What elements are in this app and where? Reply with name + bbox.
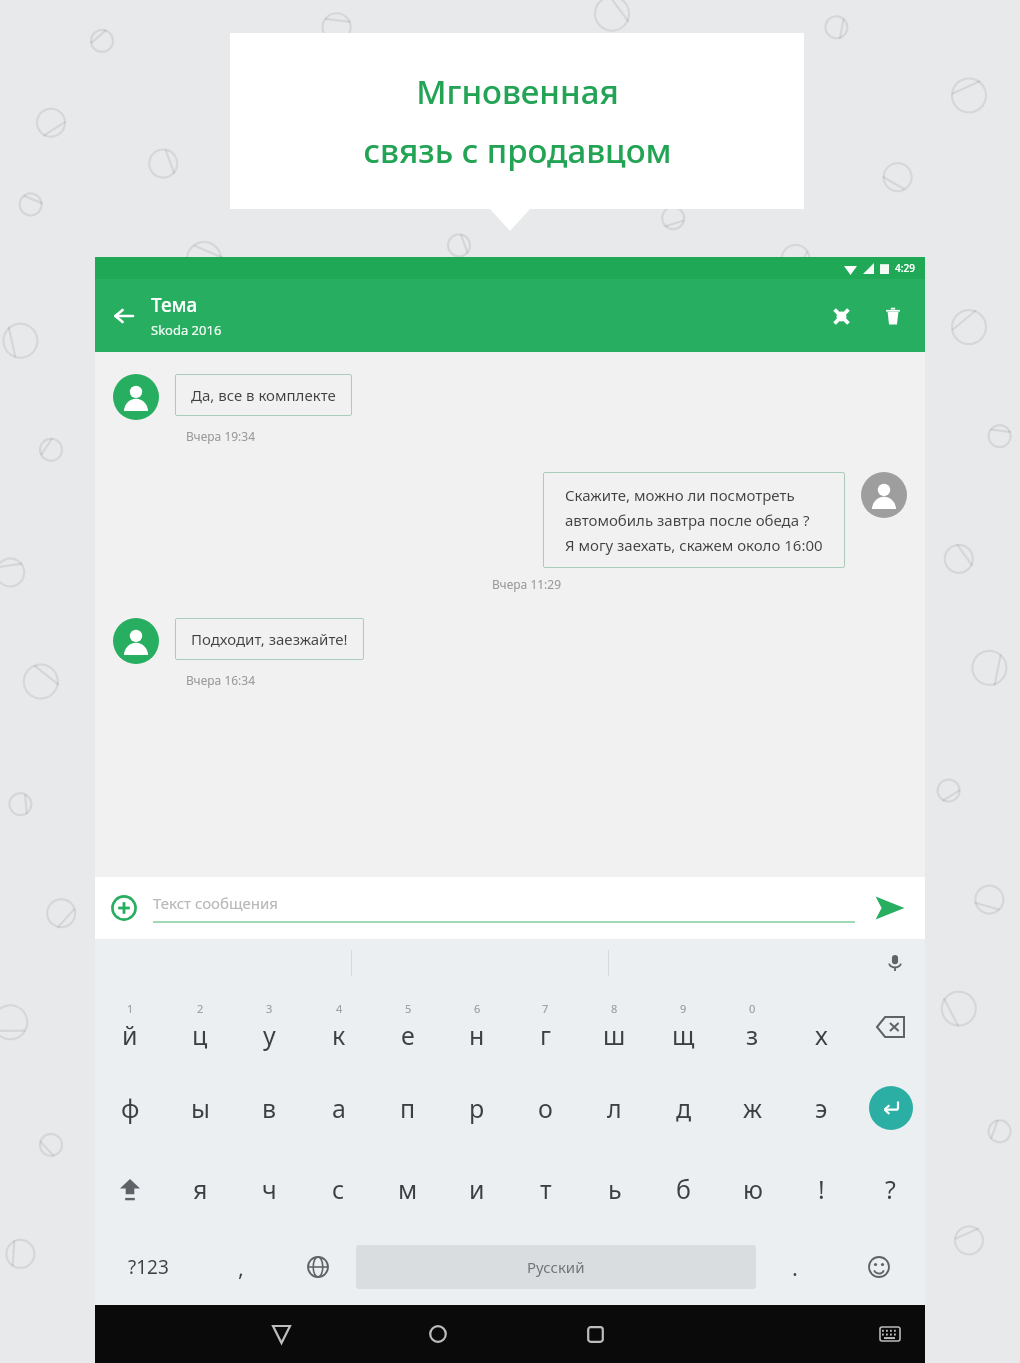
staticText: ф — [121, 1091, 140, 1125]
staticText: ю — [743, 1172, 763, 1206]
button[interactable]: 1 — [95, 986, 165, 1067]
staticText: и — [469, 1172, 485, 1206]
button[interactable]: ! — [787, 1148, 856, 1229]
staticText: ! — [818, 1172, 825, 1206]
staticText: Скажите, можно ли посмотреть — [565, 485, 795, 505]
button[interactable]: а — [304, 1067, 373, 1148]
button[interactable]: 5 — [373, 986, 442, 1067]
staticText: б — [676, 1172, 691, 1206]
button[interactable]: 9 — [649, 986, 718, 1067]
staticText: Тема — [151, 292, 198, 318]
button[interactable]: б — [649, 1148, 718, 1229]
staticText: в — [262, 1091, 277, 1125]
button[interactable]: , — [202, 1229, 279, 1305]
staticText: й — [122, 1018, 138, 1052]
button[interactable]: о — [511, 1067, 580, 1148]
staticText: 1 — [127, 1001, 134, 1016]
staticText: щ — [672, 1018, 695, 1052]
button[interactable]: я — [165, 1148, 235, 1229]
staticText: Вчера 16:34 — [186, 672, 256, 688]
staticText: Подходит, заезжайте! — [191, 629, 348, 649]
staticText: т — [540, 1172, 552, 1206]
staticText: ж — [743, 1091, 762, 1125]
staticText: е — [401, 1018, 415, 1052]
button[interactable]: 2 — [165, 986, 235, 1067]
button[interactable]: Русский — [356, 1245, 756, 1289]
staticText: Русский — [527, 1257, 585, 1277]
button[interactable]: ы — [165, 1067, 235, 1148]
button[interactable]: Клавиатура — [861, 1305, 919, 1363]
button[interactable]: 4 — [304, 986, 373, 1067]
button[interactable]: Главный экран — [409, 1305, 467, 1363]
staticText: н — [469, 1018, 485, 1052]
button[interactable]: Shift — [95, 1148, 165, 1229]
button[interactable]: Ввод — [856, 1067, 925, 1148]
staticText: 6 — [474, 1001, 481, 1016]
button[interactable]: 6 — [442, 986, 511, 1067]
button[interactable]: т — [511, 1148, 580, 1229]
staticText: д — [676, 1091, 692, 1125]
button[interactable]: 7 — [511, 986, 580, 1067]
staticText: 0 — [749, 1001, 756, 1016]
staticText: ь — [608, 1172, 622, 1206]
button[interactable]: 3 — [235, 986, 304, 1067]
button[interactable]: Эмодзи — [833, 1229, 925, 1305]
staticText: л — [607, 1091, 622, 1125]
button[interactable]: и — [442, 1148, 511, 1229]
staticText: Вчера 11:29 — [492, 576, 562, 592]
staticText: к — [332, 1018, 346, 1052]
button[interactable]: Назад — [252, 1305, 310, 1363]
button[interactable]: Заблокировать — [813, 288, 869, 344]
button[interactable]: Подходит, заезжайте! — [175, 618, 364, 660]
button[interactable]: ? — [856, 1148, 925, 1229]
staticText: ы — [191, 1091, 210, 1125]
staticText: х — [815, 1018, 828, 1052]
staticText: 2 — [197, 1001, 204, 1016]
button[interactable]: ?123 — [95, 1229, 202, 1305]
button[interactable]: п — [373, 1067, 442, 1148]
staticText: ? — [885, 1172, 896, 1206]
button[interactable]: Отправить — [855, 877, 925, 939]
button[interactable]: э — [787, 1067, 856, 1148]
button[interactable]: в — [235, 1067, 304, 1148]
button[interactable]: Добавить вложение — [95, 879, 153, 937]
button[interactable]: ь — [580, 1148, 649, 1229]
button[interactable]: Недавние приложения — [566, 1305, 624, 1363]
staticText: Мгновенная — [416, 69, 619, 114]
button[interactable]: ж — [718, 1067, 787, 1148]
button[interactable]: Скажите, можно ли посмотреть — [543, 472, 845, 568]
staticText: у — [263, 1018, 276, 1052]
button[interactable]: м — [373, 1148, 442, 1229]
button[interactable]: 0 — [718, 986, 787, 1067]
button[interactable]: с — [304, 1148, 373, 1229]
staticText: Skoda 2016 — [151, 321, 222, 339]
button[interactable]: ф — [95, 1067, 165, 1148]
staticText: э — [815, 1091, 828, 1125]
staticText: Текст сообщения — [153, 893, 278, 913]
button[interactable]: . — [756, 1229, 833, 1305]
button[interactable]: д — [649, 1067, 718, 1148]
button[interactable]: Сменить язык — [279, 1229, 356, 1305]
button[interactable]: л — [580, 1067, 649, 1148]
staticText: 9 — [680, 1001, 687, 1016]
staticText: Да, все в комплекте — [191, 385, 336, 405]
button[interactable]: р — [442, 1067, 511, 1148]
staticText: 4:29 — [895, 261, 915, 275]
staticText: автомобиль завтра после обеда ? — [565, 510, 810, 530]
button[interactable]: Да, все в комплекте — [175, 374, 352, 416]
staticText: 7 — [542, 1001, 549, 1016]
button[interactable]: 8 — [580, 986, 649, 1067]
staticText: 4 — [336, 1001, 343, 1016]
button[interactable]: х — [787, 986, 856, 1067]
button[interactable]: Назад — [95, 288, 151, 344]
button[interactable]: Голосовой ввод — [865, 939, 925, 986]
staticText: 3 — [266, 1001, 273, 1016]
staticText: 5 — [405, 1001, 412, 1016]
staticText: связь с продавцом — [363, 128, 672, 173]
staticText: ц — [192, 1018, 208, 1052]
button[interactable]: ю — [718, 1148, 787, 1229]
button[interactable]: Backspace — [856, 986, 925, 1067]
button[interactable]: ч — [235, 1148, 304, 1229]
staticText: я — [193, 1172, 208, 1206]
button[interactable]: Удалить — [869, 288, 917, 344]
